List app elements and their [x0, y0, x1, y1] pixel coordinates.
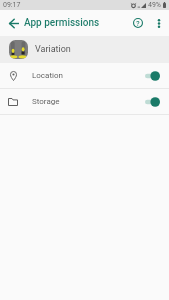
staticText: Location	[32, 71, 63, 80]
staticText: Variation	[35, 44, 71, 55]
staticText: 09:17	[3, 1, 21, 9]
button[interactable]: Toggle permission	[145, 69, 160, 83]
staticText: Storage	[32, 97, 60, 106]
button[interactable]: Toggle permission	[145, 95, 160, 109]
button[interactable]: Help	[127, 10, 148, 36]
button[interactable]: Back	[0, 10, 24, 36]
staticText: ?	[136, 19, 140, 28]
button[interactable]: Location	[0, 63, 169, 88]
button[interactable]: Storage	[0, 89, 169, 114]
staticText: 49%	[148, 1, 161, 9]
staticText: App permissions	[24, 17, 100, 29]
button[interactable]: More options	[148, 10, 169, 36]
